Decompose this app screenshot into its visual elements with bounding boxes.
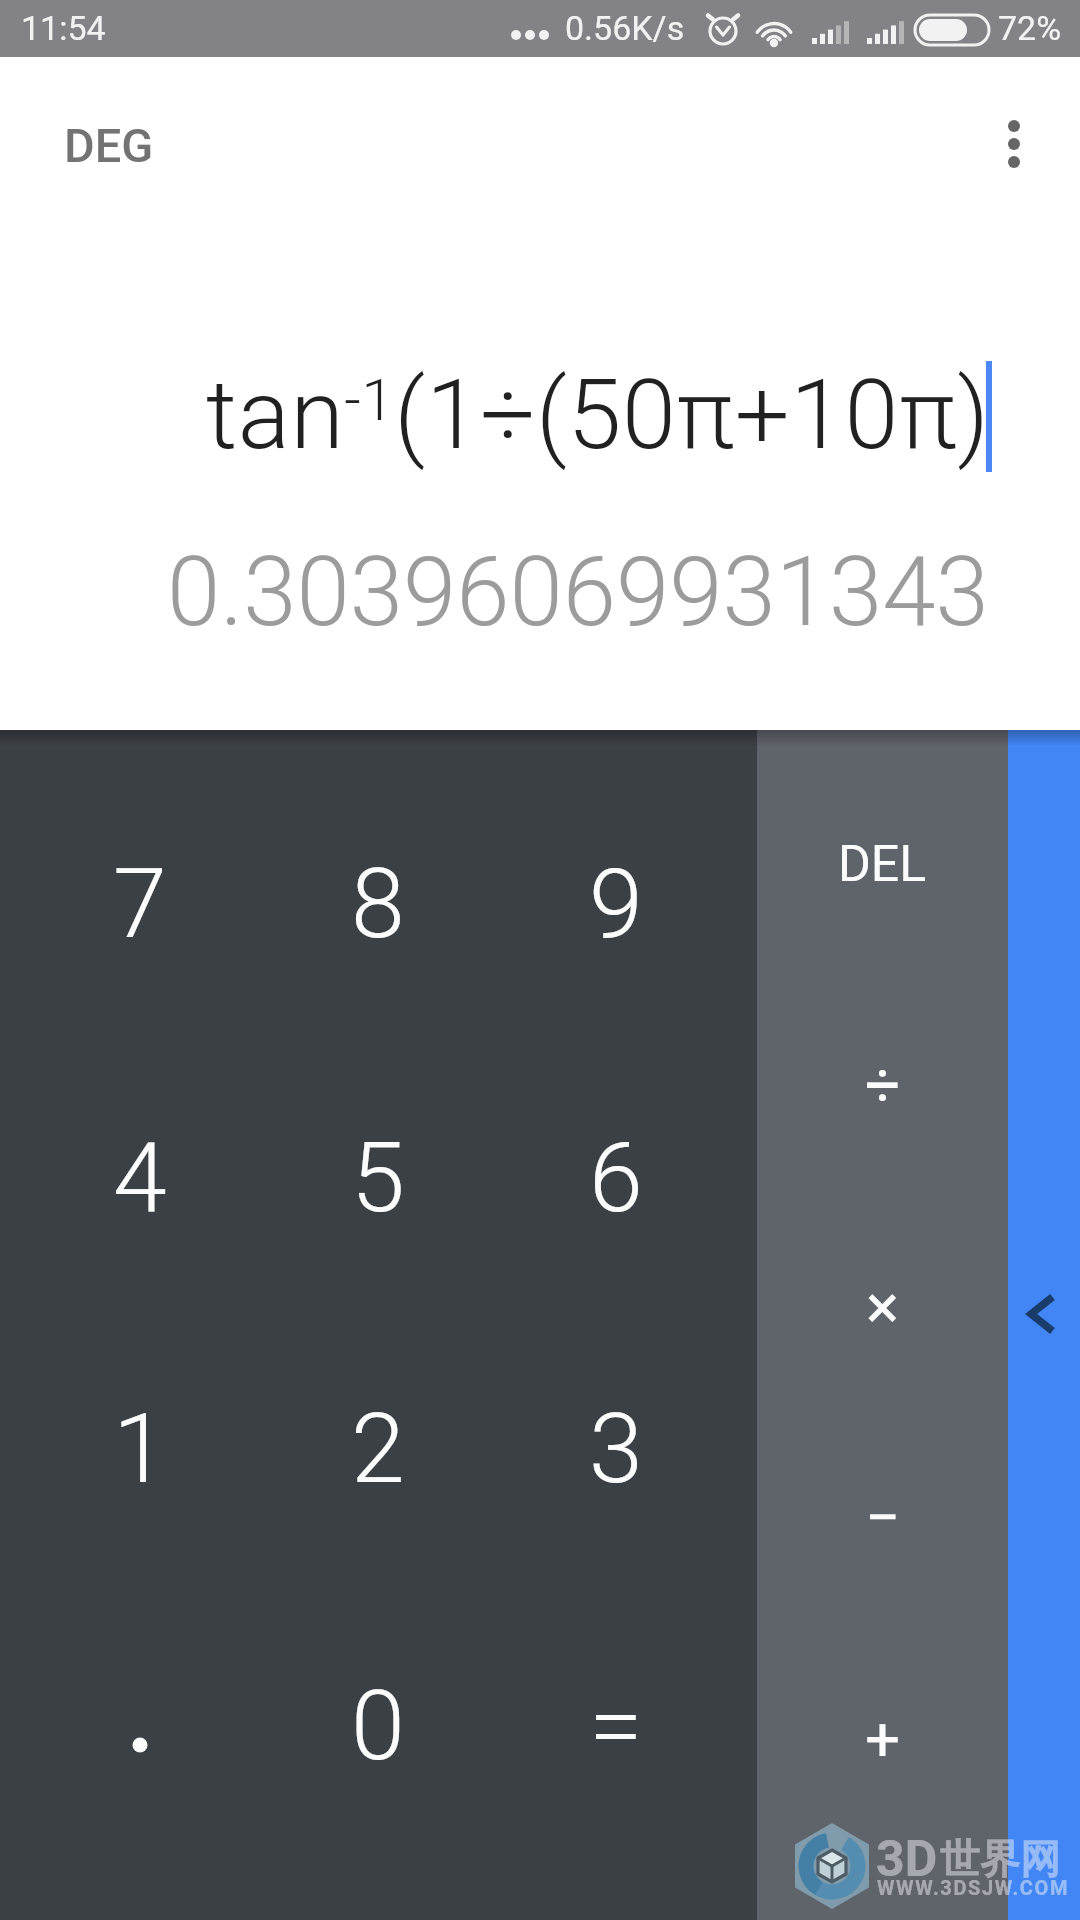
staticText: DEL: [838, 835, 927, 894]
button[interactable]: 3: [497, 1313, 735, 1585]
staticText: 72%: [998, 8, 1062, 48]
staticText: tan-1(1÷(50π+10π): [206, 358, 990, 472]
staticText: 4: [113, 1121, 167, 1235]
staticText: DEG: [64, 118, 154, 173]
staticText: WWW.3DSJW.COM: [877, 1876, 1070, 1899]
staticText: +: [865, 1702, 901, 1775]
button[interactable]: 6: [497, 1042, 735, 1314]
button[interactable]: 0: [259, 1590, 497, 1862]
button[interactable]: [980, 100, 1048, 190]
staticText: 0: [351, 1669, 405, 1783]
button[interactable]: =: [497, 1590, 735, 1862]
staticText: 5: [351, 1121, 405, 1235]
button[interactable]: [21, 1590, 259, 1862]
button[interactable]: 5: [259, 1042, 497, 1314]
staticText: 3: [589, 1392, 643, 1506]
staticText: 3D: [876, 1830, 938, 1889]
button[interactable]: 1: [21, 1313, 259, 1585]
button[interactable]: DEL: [757, 764, 1008, 964]
button[interactable]: 9: [497, 768, 735, 1040]
button[interactable]: [1008, 730, 1080, 1920]
staticText: −: [865, 1481, 901, 1554]
staticText: 1: [113, 1392, 167, 1506]
staticText: 0.56K/s: [565, 8, 685, 48]
button[interactable]: +: [757, 1633, 1008, 1843]
button[interactable]: 8: [259, 768, 497, 1040]
staticText: 7: [113, 847, 167, 961]
staticText: 2: [351, 1392, 405, 1506]
staticText: 世界网: [940, 1834, 1060, 1884]
button[interactable]: ×: [757, 1201, 1008, 1411]
staticText: ×: [866, 1270, 900, 1343]
staticText: =: [589, 1669, 643, 1783]
button[interactable]: 2: [259, 1313, 497, 1585]
staticText: 6: [589, 1121, 643, 1235]
button[interactable]: ÷: [757, 979, 1008, 1189]
staticText: 8: [351, 847, 405, 961]
button[interactable]: 4: [21, 1042, 259, 1314]
staticText: ÷: [865, 1048, 901, 1121]
staticText: 11:54: [21, 8, 106, 48]
button[interactable]: 7: [21, 768, 259, 1040]
staticText: 9: [589, 847, 643, 961]
staticText: 0.30396069931343: [167, 536, 989, 649]
button[interactable]: −: [757, 1412, 1008, 1622]
